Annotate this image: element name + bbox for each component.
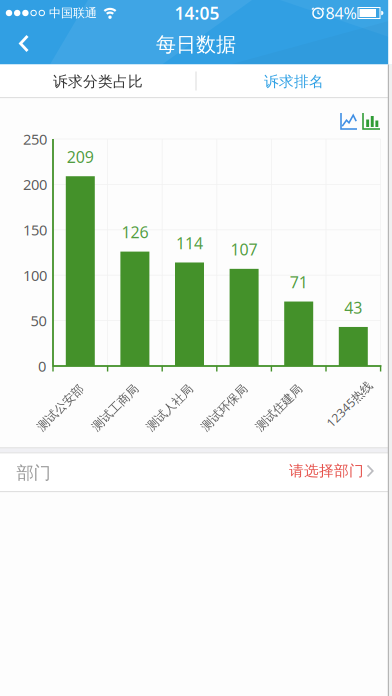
staticText: 测试环保局 (194, 400, 254, 415)
staticText: 测试住建局 (249, 400, 309, 415)
staticText: 200 (23, 175, 47, 194)
staticText: 每日数据 (156, 32, 236, 57)
staticText: 12345热线 (320, 396, 379, 412)
staticText: 84% (325, 2, 356, 24)
button[interactable]: Back (0, 0, 44, 44)
staticText: 14:05 (174, 1, 219, 24)
staticText: 中国联通 (49, 6, 97, 20)
staticText: 150 (23, 220, 47, 240)
staticText: 114 (176, 232, 203, 254)
staticText: 测试公安部 (30, 400, 90, 415)
staticText: 请选择部门 (289, 462, 364, 480)
staticText: 诉求排名 (264, 72, 324, 90)
staticText: 107 (231, 239, 258, 260)
button[interactable]: 折线图 (338, 112, 358, 130)
staticText: 100 (23, 265, 47, 285)
staticText: 209 (67, 146, 94, 167)
staticText: 诉求分类占比 (53, 72, 143, 90)
staticText: 0 (38, 356, 46, 376)
button[interactable]: 柱状图 (361, 112, 381, 130)
staticText: 测试人社局 (140, 400, 200, 415)
staticText: 126 (121, 221, 148, 243)
staticText: 部门 (16, 462, 50, 484)
button[interactable]: 诉求排名 (196, 65, 391, 98)
staticText: 43 (344, 297, 362, 318)
staticText: 71 (290, 271, 308, 293)
staticText: 50 (30, 311, 46, 330)
button[interactable]: 诉求分类占比 (0, 65, 195, 98)
staticText: 250 (23, 129, 47, 149)
button[interactable]: 部门 (0, 452, 392, 492)
staticText: 测试工商局 (85, 400, 145, 415)
